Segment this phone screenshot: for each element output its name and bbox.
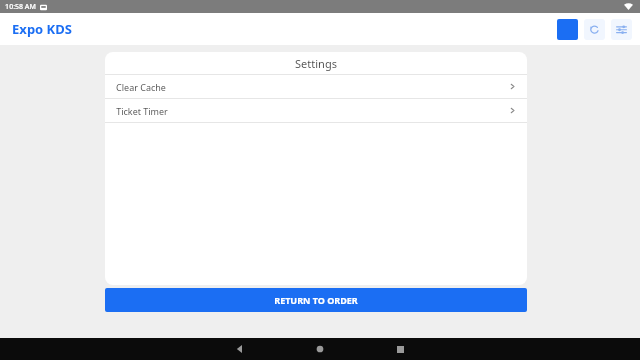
button[interactable]: Expo KDS bbox=[12, 20, 72, 38]
staticText: 10:58 AM bbox=[5, 2, 36, 12]
button[interactable]: Home bbox=[300, 338, 340, 360]
button[interactable]: Back bbox=[220, 338, 260, 360]
button[interactable]: Settings bbox=[611, 19, 632, 40]
button[interactable]: RETURN TO ORDER bbox=[105, 288, 527, 312]
staticText: Settings bbox=[295, 56, 337, 71]
button[interactable]: Undo bbox=[584, 19, 605, 40]
button[interactable]: Clear Cache bbox=[105, 75, 527, 98]
button[interactable]: Ticket Timer bbox=[105, 99, 527, 122]
staticText: RETURN TO ORDER bbox=[274, 294, 358, 306]
staticText: Clear Cache bbox=[116, 81, 166, 93]
staticText: Expo KDS bbox=[12, 20, 72, 38]
staticText: Ticket Timer bbox=[116, 105, 168, 117]
button[interactable]: Color swatch bbox=[557, 19, 578, 40]
button[interactable]: Recents bbox=[380, 338, 420, 360]
